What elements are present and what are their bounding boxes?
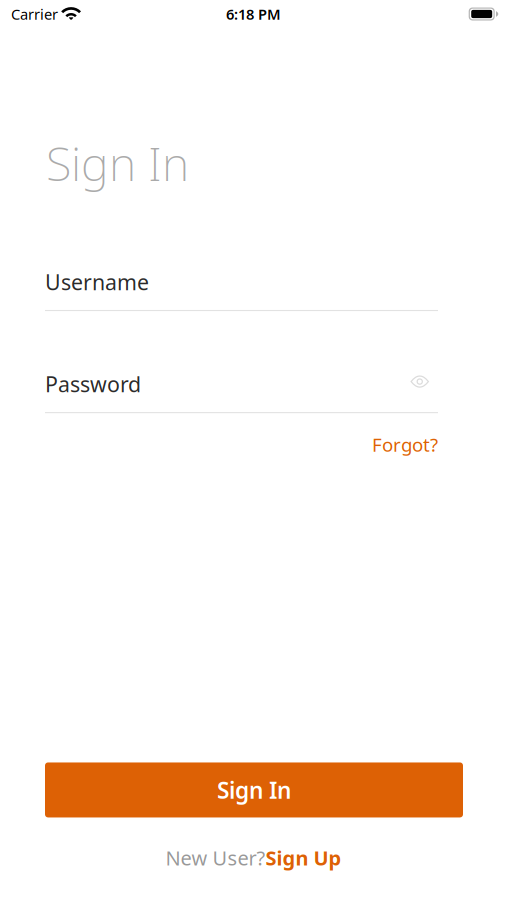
button[interactable]: Forgot? (372, 429, 438, 460)
staticText: Forgot? (372, 432, 438, 457)
button[interactable]: Sign In (45, 762, 463, 817)
staticText: New User? (165, 844, 265, 871)
staticText: Carrier (11, 4, 58, 24)
staticText: Username (45, 268, 149, 296)
staticText: Password (45, 370, 141, 398)
button[interactable]: Show password (410, 376, 438, 392)
staticText: Sign In (217, 775, 291, 805)
button[interactable]: New User? (165, 840, 341, 875)
button[interactable]: Username (45, 271, 438, 293)
staticText: Sign Up (265, 844, 341, 871)
staticText: 6:18 PM (226, 4, 281, 24)
staticText: Sign In (46, 132, 189, 194)
button[interactable]: Password (45, 373, 410, 395)
